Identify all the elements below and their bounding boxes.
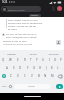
- button[interactable]: H: [37, 64, 43, 72]
- staticText: Sound: [29, 52, 37, 55]
- staticText: O: [54, 58, 57, 62]
- button[interactable]: Contact: [56, 40, 61, 45]
- button[interactable]: E: [14, 56, 21, 64]
- staticText: D: [19, 66, 22, 70]
- staticText: English: [28, 85, 36, 88]
- button[interactable]: Backspace: [56, 72, 64, 80]
- staticText: On Thu, 28 Mar 2024 at 09:12,: [6, 33, 37, 36]
- staticText: F: [27, 66, 29, 70]
- staticText: E: [17, 58, 19, 62]
- button[interactable]: F: [24, 64, 31, 72]
- button[interactable]: Q: [0, 56, 7, 64]
- staticText: L: [57, 66, 59, 70]
- button[interactable]: D: [17, 64, 24, 72]
- staticText: outline. Notices yes, we will: [8, 25, 37, 28]
- button[interactable]: C: [21, 72, 28, 80]
- button[interactable]: Space: [14, 84, 50, 89]
- button[interactable]: U: [40, 56, 46, 64]
- staticText: Q: [2, 58, 5, 62]
- staticText: Bonjour à tous, je vous: [3, 40, 27, 43]
- button[interactable]: Send: [56, 84, 63, 89]
- button[interactable]: Sounded: [43, 50, 64, 56]
- button[interactable]: A: [3, 64, 10, 72]
- button[interactable]: Shift: [0, 72, 8, 80]
- button[interactable]: J: [43, 64, 49, 72]
- button[interactable]: O: [52, 56, 58, 64]
- staticText: M: [51, 74, 54, 78]
- button[interactable]: P: [58, 56, 64, 64]
- button[interactable]: B: [35, 72, 42, 80]
- staticText: J: [46, 66, 47, 70]
- staticText: Details: [31, 14, 39, 17]
- button[interactable]: Y: [34, 56, 40, 64]
- button[interactable]: M: [49, 72, 56, 80]
- button[interactable]: L: [55, 64, 61, 72]
- button[interactable]: Search in mail: [1, 6, 41, 12]
- staticText: Sounds: [7, 52, 16, 55]
- button[interactable]: I: [46, 56, 52, 64]
- button[interactable]: X: [14, 72, 21, 80]
- button[interactable]: T: [28, 56, 34, 64]
- staticText: W: [9, 58, 12, 62]
- staticText: Y: [36, 58, 38, 62]
- button[interactable]: Sounds: [0, 50, 22, 56]
- button[interactable]: K: [49, 64, 55, 72]
- button[interactable]: G: [31, 64, 37, 72]
- staticText: H: [39, 66, 42, 70]
- staticText: S: [13, 66, 15, 70]
- staticText: .: [53, 85, 54, 89]
- button[interactable]: W: [7, 56, 14, 64]
- staticText: Z: [10, 74, 12, 78]
- button[interactable]: Symbols: [1, 81, 8, 92]
- staticText: I: [49, 58, 50, 62]
- staticText: B: [38, 74, 40, 78]
- staticText: R: [24, 58, 26, 62]
- button[interactable]: Sound: [22, 50, 43, 56]
- staticText: V: [31, 74, 33, 78]
- staticText: K: [51, 66, 53, 70]
- staticText: A: [6, 66, 8, 70]
- staticText: T: [30, 58, 32, 62]
- button[interactable]: V: [28, 72, 35, 80]
- button[interactable]: Z: [8, 72, 14, 80]
- staticText: be there.: [8, 28, 18, 31]
- staticText: souhaite une bonne journée.: [3, 43, 33, 46]
- staticText: 9:24: [2, 0, 8, 4]
- button[interactable]: Account: [57, 6, 62, 11]
- staticText: alice <alice@mail.com> wrote:: [6, 36, 37, 39]
- staticText: P: [60, 58, 62, 62]
- staticText: X: [17, 74, 19, 78]
- button[interactable]: Details: [29, 14, 41, 17]
- staticText: Search in mail: [8, 8, 25, 11]
- staticText: ?123: [2, 85, 7, 88]
- button[interactable]: N: [42, 72, 49, 80]
- button[interactable]: R: [21, 56, 28, 64]
- staticText: C: [24, 74, 26, 78]
- button[interactable]: Emoji: [8, 81, 13, 92]
- staticText: G: [33, 66, 36, 70]
- staticText: N: [44, 74, 47, 78]
- staticText: prompt reply and for sending me: [8, 22, 43, 25]
- staticText: Dear Forever, thanks for your: [8, 19, 38, 22]
- button[interactable]: S: [10, 64, 17, 72]
- staticText: U: [42, 58, 45, 62]
- staticText: Sounded: [48, 52, 59, 55]
